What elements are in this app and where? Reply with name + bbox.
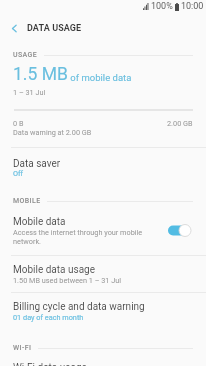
- staticText: USAGE: [13, 51, 38, 59]
- staticText: 1.5 MB: [13, 64, 68, 85]
- staticText: MOBILE: [13, 197, 41, 205]
- staticText: 0 B: [13, 119, 24, 128]
- staticText: Off: [13, 169, 24, 178]
- staticText: 100%: [151, 1, 173, 12]
- staticText: Data warning at 2.00 GB: [13, 128, 92, 137]
- button[interactable]: [0, 152, 206, 184]
- button[interactable]: [0, 297, 206, 329]
- staticText: Mobile data: [13, 216, 66, 228]
- staticText: 1 – 31 Jul: [13, 88, 46, 97]
- staticText: Billing cycle and data warning: [13, 301, 145, 313]
- staticText: Wi-Fi data usage: [13, 362, 87, 366]
- button[interactable]: [0, 260, 206, 292]
- staticText: DATA USAGE: [27, 23, 82, 34]
- staticText: Mobile data usage: [13, 264, 95, 276]
- staticText: Access the internet through your mobile …: [13, 228, 151, 246]
- button[interactable]: Back: [0, 14, 28, 42]
- staticText: of mobile data: [68, 72, 132, 83]
- staticText: Data saver: [13, 158, 61, 170]
- staticText: 01 day of each month: [13, 313, 84, 322]
- staticText: 2.00 GB: [167, 119, 193, 128]
- staticText: 10:00: [181, 1, 204, 12]
- button[interactable]: [0, 211, 206, 253]
- button[interactable]: Mobile data: [168, 224, 191, 237]
- staticText: 1.50 MB used between 1 – 31 Jul: [13, 276, 122, 285]
- staticText: WI-FI: [13, 344, 32, 352]
